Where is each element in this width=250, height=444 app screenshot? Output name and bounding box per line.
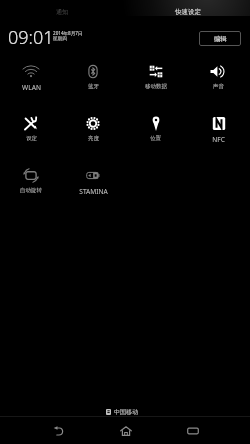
staticText: 位置 bbox=[150, 135, 161, 142]
button[interactable]: Back bbox=[24, 417, 92, 444]
staticText: WLAN bbox=[22, 83, 41, 92]
button[interactable]: NFC bbox=[187, 110, 250, 162]
staticText: 移动数据 bbox=[145, 83, 167, 90]
staticText: 通知 bbox=[56, 8, 69, 16]
button[interactable]: 亮度 bbox=[62, 110, 124, 162]
button[interactable]: 自动旋转 bbox=[0, 162, 62, 214]
staticText: 设定 bbox=[26, 135, 37, 142]
button[interactable]: 快速设定 bbox=[125, 0, 250, 24]
staticText: 亮度 bbox=[88, 135, 99, 142]
staticText: 编辑 bbox=[214, 35, 227, 43]
button[interactable]: 移动数据 bbox=[124, 58, 187, 110]
button[interactable]: 位置 bbox=[124, 110, 187, 162]
button[interactable]: 声音 bbox=[187, 58, 250, 110]
staticText: 星期四 bbox=[53, 36, 67, 42]
button[interactable]: 设定 bbox=[0, 110, 62, 162]
staticText: 自动旋转 bbox=[20, 187, 42, 194]
staticText: 蓝牙 bbox=[88, 83, 99, 90]
staticText: 2014年8月7日 bbox=[53, 30, 83, 36]
button[interactable]: Recent apps bbox=[159, 417, 226, 444]
button[interactable]: 通知 bbox=[0, 0, 125, 24]
button[interactable]: 编辑 bbox=[199, 31, 241, 46]
button[interactable]: 蓝牙 bbox=[62, 58, 124, 110]
staticText: 声音 bbox=[213, 83, 224, 90]
button[interactable]: 09:01 bbox=[8, 25, 54, 50]
staticText: 快速设定 bbox=[175, 8, 201, 16]
staticText: STAMINA bbox=[79, 187, 108, 196]
button[interactable]: STAMINA bbox=[62, 162, 124, 214]
button[interactable]: WLAN bbox=[0, 58, 62, 110]
staticText: 中国移动 bbox=[114, 408, 138, 416]
staticText: 09:01 bbox=[8, 25, 54, 50]
button[interactable]: Home bbox=[92, 417, 159, 444]
staticText: NFC bbox=[212, 135, 225, 144]
